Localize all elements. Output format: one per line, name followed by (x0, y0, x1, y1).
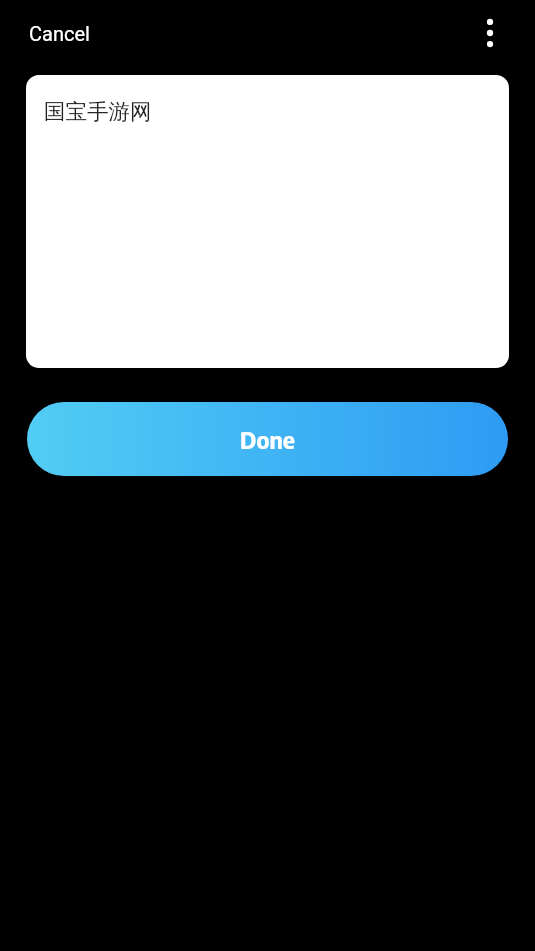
button[interactable]: Cancel (13, 12, 106, 55)
button[interactable]: Done (27, 402, 508, 476)
button[interactable]: More options (467, 10, 513, 56)
button[interactable]: 国宝手游网 (26, 75, 509, 368)
staticText: Done (240, 425, 295, 454)
staticText: Cancel (29, 22, 90, 45)
staticText: 国宝手游网 (44, 98, 152, 125)
